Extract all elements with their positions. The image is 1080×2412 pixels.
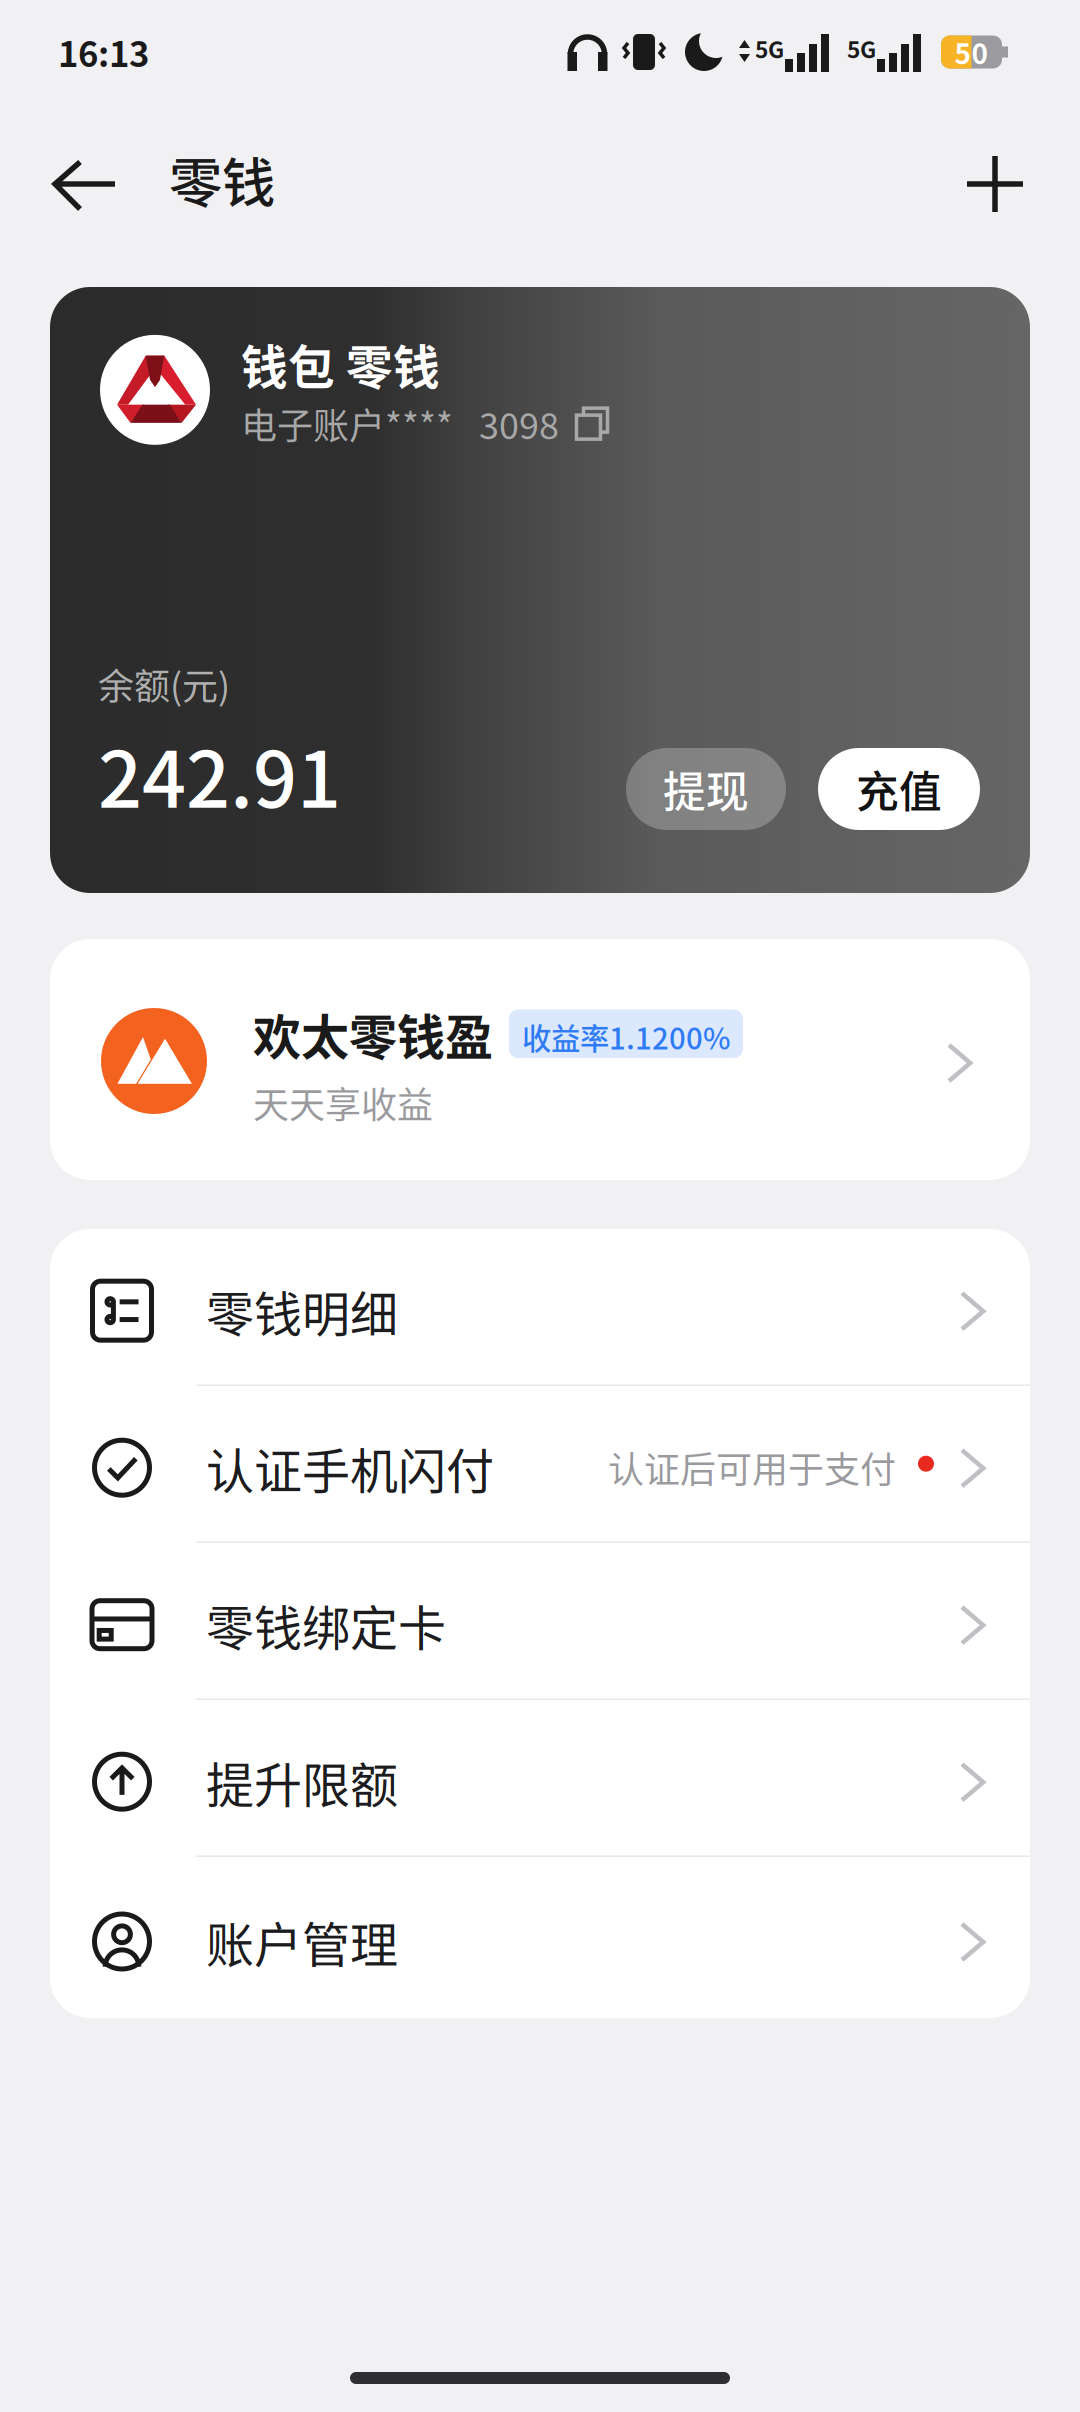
button[interactable]: 零钱绑定卡: [50, 1543, 1030, 1700]
staticText: 余额(元): [98, 658, 230, 710]
staticText: 认证后可用于支付: [608, 1441, 896, 1493]
button[interactable]: 提升限额: [50, 1700, 1030, 1857]
button[interactable]: 提现: [626, 748, 786, 830]
staticText: 零钱绑定卡: [206, 1590, 446, 1659]
button[interactable]: 认证手机闪付: [50, 1386, 1030, 1543]
staticText: 5G: [847, 32, 876, 65]
staticText: 零钱: [169, 141, 275, 218]
staticText: 充值: [856, 758, 942, 820]
staticText: 账户管理: [206, 1907, 398, 1976]
staticText: 5G: [755, 32, 784, 65]
staticText: 提升限额: [206, 1747, 398, 1816]
button[interactable]: Copy account number: [575, 405, 609, 443]
staticText: 零钱明细: [206, 1276, 398, 1345]
staticText: 天天享收益: [253, 1076, 433, 1129]
staticText: 收益率1.1200%: [522, 1015, 731, 1058]
staticText: 50: [954, 32, 988, 72]
staticText: 3098: [479, 398, 559, 450]
button[interactable]: 账户管理: [50, 1857, 1030, 2018]
staticText: 欢太零钱盈: [253, 999, 493, 1068]
button[interactable]: 充值: [818, 748, 980, 830]
button[interactable]: Back: [34, 121, 136, 227]
staticText: 242.91: [98, 718, 341, 830]
staticText: 提现: [663, 758, 749, 820]
staticText: 钱包 零钱: [241, 330, 440, 398]
staticText: 16:13: [58, 27, 149, 77]
button[interactable]: 零钱明细: [50, 1229, 1030, 1386]
button[interactable]: Add: [946, 120, 1044, 228]
staticText: 电子账户****: [241, 398, 453, 450]
staticText: 认证手机闪付: [206, 1433, 494, 1502]
button[interactable]: 欢太零钱盈: [50, 939, 1030, 1180]
